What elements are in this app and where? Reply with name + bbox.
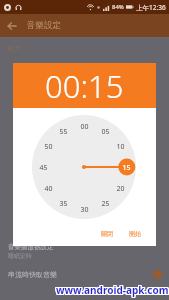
staticText: 45 — [39, 163, 48, 173]
staticText: 睡眠定時 — [8, 252, 32, 260]
button[interactable]: 串流時快取音樂 — [0, 266, 169, 283]
button[interactable]: 關閉 — [95, 226, 119, 242]
staticText: 25 — [101, 199, 110, 209]
staticText: 00 — [80, 122, 89, 132]
staticText: www.android-apk.com — [55, 284, 168, 298]
staticText: 串流時快取音樂 — [8, 270, 57, 279]
staticText: www.android-apk.com — [55, 282, 168, 296]
staticText: 00:15 — [45, 65, 124, 107]
staticText: 15 — [122, 163, 131, 173]
staticText: 05 — [101, 127, 110, 137]
staticText: 上午12:36 — [136, 3, 166, 12]
staticText: 50 — [44, 142, 53, 152]
button[interactable]: Back — [0, 14, 23, 37]
staticText: 音樂播放器設定 — [8, 243, 54, 251]
staticText: www.android-apk.com — [57, 284, 169, 298]
staticText: 音樂設定 — [27, 20, 61, 31]
staticText: 開始 — [129, 230, 141, 238]
staticText: www.android-apk.com — [56, 283, 169, 297]
staticText: 40 — [44, 184, 53, 194]
button[interactable]: 開始 — [123, 226, 147, 242]
staticText: 20 — [116, 184, 125, 194]
staticText: 10 — [116, 142, 125, 152]
staticText: 帳戶 — [8, 45, 21, 53]
staticText: www.android-apk.com — [55, 283, 168, 297]
button[interactable]: 音樂播放器設定 — [0, 242, 169, 266]
staticText: www.android-apk.com — [57, 283, 169, 297]
staticText: 55 — [59, 127, 68, 137]
staticText: 35 — [59, 199, 68, 209]
staticText: www.android-apk.com — [57, 282, 169, 296]
staticText: 84% — [112, 3, 124, 11]
staticText: www.android-apk.com — [56, 282, 169, 296]
staticText: 關閉 — [101, 230, 113, 238]
staticText: www.android-apk.com — [56, 284, 169, 298]
staticText: 30 — [80, 205, 89, 215]
